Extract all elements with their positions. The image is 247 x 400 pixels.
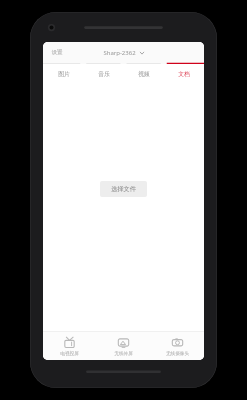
staticText: 视频 [138,70,150,77]
staticText: 设置 [51,49,63,56]
staticText: 电视投屏 [60,351,79,357]
staticText: 文档 [178,70,190,77]
button[interactable]: Wireless camera [150,332,204,360]
button[interactable]: 图片 [43,64,84,83]
button[interactable]: 文档 [164,64,204,83]
button[interactable]: 选择文件 [100,181,147,197]
staticText: 音乐 [98,70,110,77]
button[interactable]: Wireless screen [96,332,150,360]
staticText: Sharp-2362 [103,49,136,57]
staticText: 图片 [58,70,70,77]
staticText: 无线摄像头 [166,351,189,357]
button[interactable]: 设置 [43,45,71,60]
button[interactable]: 视频 [124,64,164,83]
staticText: 无线传屏 [114,351,133,357]
button[interactable]: Sharp-2362 [97,46,151,60]
button[interactable]: TV cast [43,332,96,360]
button[interactable]: 音乐 [84,64,124,83]
staticText: 选择文件 [111,185,136,193]
